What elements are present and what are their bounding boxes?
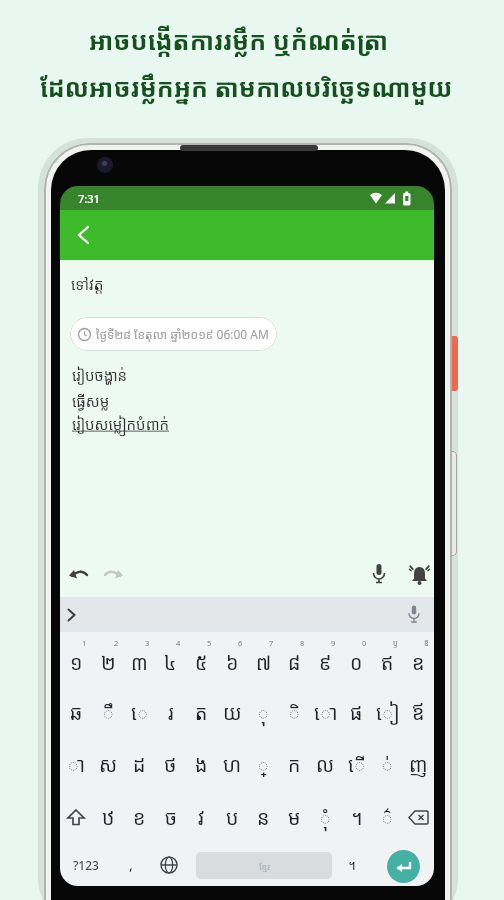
button[interactable]: ។ <box>341 791 372 843</box>
button[interactable]: ប <box>217 791 248 843</box>
staticText: ?123 <box>73 857 99 873</box>
staticText: ៣ <box>131 649 148 676</box>
staticText: ៤ <box>164 649 177 676</box>
button[interactable]: ខ <box>124 791 155 843</box>
button[interactable]: ដ <box>124 737 155 791</box>
staticText: ៧ <box>256 649 272 676</box>
staticText: ៀ <box>376 699 400 726</box>
button[interactable]: យ <box>217 687 248 737</box>
staticText: ុ <box>257 699 270 726</box>
staticText: 0 <box>362 638 367 648</box>
button[interactable]: ០ <box>341 637 372 687</box>
staticText: ០ <box>350 649 363 676</box>
button[interactable]: ខ្មែរ <box>196 852 332 879</box>
button[interactable]: ត <box>186 687 217 737</box>
staticText: ប <box>226 804 239 831</box>
button[interactable]: ឋ <box>92 791 124 843</box>
button[interactable]: ៀ <box>372 687 403 737</box>
button[interactable]: ថ <box>155 737 186 791</box>
staticText: ផ <box>350 699 363 726</box>
button[interactable]: ៤ <box>155 637 186 687</box>
button[interactable]: ៌ <box>372 791 403 843</box>
button[interactable]: ឹ <box>92 687 124 737</box>
button[interactable]: ៩ <box>310 637 341 687</box>
button[interactable]: ្ <box>248 737 279 791</box>
button[interactable] <box>102 568 124 586</box>
staticText: រៀបសម្លៀកបំពាក់ <box>72 414 170 434</box>
button[interactable]: ស <box>92 737 124 791</box>
button[interactable]: ៦ <box>217 637 248 687</box>
staticText: ខ <box>133 804 146 831</box>
staticText: 7:31 <box>78 191 100 206</box>
button[interactable]: , <box>115 843 147 886</box>
staticText: ង <box>195 751 208 778</box>
button[interactable]: ឧ <box>403 637 434 687</box>
staticText: ិ <box>288 699 301 726</box>
button[interactable]: ឪ <box>403 687 434 737</box>
button[interactable]: ៧ <box>248 637 279 687</box>
staticText: ា <box>67 751 85 778</box>
staticText: 5 <box>207 638 212 648</box>
staticText: ១ <box>70 649 83 676</box>
button[interactable]: ់ <box>372 737 403 791</box>
button[interactable]: ១ <box>60 637 92 687</box>
button[interactable]: ន <box>248 791 279 843</box>
staticText: យ <box>223 699 242 726</box>
button[interactable]: ោ <box>310 687 341 737</box>
button[interactable]: ច <box>155 791 186 843</box>
button[interactable]: ឥ <box>372 637 403 687</box>
button[interactable]: ។ <box>336 843 368 886</box>
staticText: ្ <box>257 751 270 778</box>
button[interactable] <box>409 564 430 587</box>
staticText: ៌ <box>381 804 394 831</box>
button[interactable] <box>387 850 420 883</box>
staticText: 2 <box>114 638 119 648</box>
staticText: រ <box>168 699 174 726</box>
button[interactable]: េ <box>124 687 155 737</box>
staticText: ឫ <box>393 638 398 648</box>
staticText: ក <box>288 751 301 778</box>
button[interactable]: ុំ <box>310 791 341 843</box>
button[interactable]: ក <box>279 737 310 791</box>
button[interactable] <box>67 608 76 622</box>
staticText: ទៅវត្ត <box>71 274 104 294</box>
button[interactable]: ើ <box>341 737 372 791</box>
button[interactable]: ង <box>186 737 217 791</box>
button[interactable] <box>403 791 434 843</box>
staticText: ឪ <box>412 699 425 726</box>
button[interactable]: វ <box>186 791 217 843</box>
button[interactable]: ហ <box>217 737 248 791</box>
button[interactable] <box>70 221 98 249</box>
button[interactable]: ម <box>279 791 310 843</box>
button[interactable] <box>408 605 420 624</box>
button[interactable]: ញ <box>403 737 434 791</box>
staticText: ៩ <box>319 649 332 676</box>
staticText: 3 <box>145 638 150 648</box>
button[interactable]: ផ <box>341 687 372 737</box>
button[interactable]: ?123 <box>60 843 112 886</box>
button[interactable]: ុ <box>248 687 279 737</box>
button[interactable]: ឆ <box>60 687 92 737</box>
button[interactable]: ា <box>60 737 92 791</box>
button[interactable]: ២ <box>92 637 124 687</box>
staticText: ឋ <box>102 804 115 831</box>
button[interactable] <box>372 563 386 587</box>
button[interactable]: ថ្ងៃទី២៨ ខែតុលា ឆ្នាំ២០១៩ 06:00 AM <box>78 317 269 351</box>
button[interactable] <box>151 843 187 886</box>
button[interactable]: រ <box>155 687 186 737</box>
button[interactable] <box>68 568 90 586</box>
staticText: ដ <box>133 751 146 778</box>
staticText: ច <box>165 804 177 831</box>
button[interactable]: ល <box>310 737 341 791</box>
button[interactable]: ៣ <box>124 637 155 687</box>
button[interactable]: ៨ <box>279 637 310 687</box>
button[interactable] <box>60 791 92 843</box>
staticText: ត <box>195 699 208 726</box>
staticText: ឨ <box>424 638 429 648</box>
button[interactable]: ិ <box>279 687 310 737</box>
staticText: ន <box>257 804 270 831</box>
staticText: ឹ <box>102 699 115 726</box>
button[interactable]: ៥ <box>186 637 217 687</box>
staticText: ម <box>288 804 301 831</box>
staticText: ញ <box>409 751 428 778</box>
